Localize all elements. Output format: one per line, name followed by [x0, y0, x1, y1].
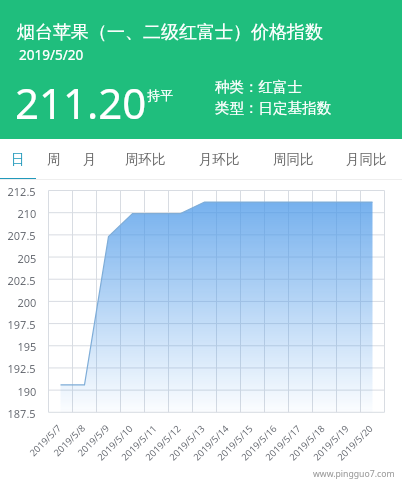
button[interactable]: 月环比: [182, 139, 256, 180]
button[interactable]: 周同比: [256, 139, 330, 180]
staticText: 月环比: [199, 151, 240, 168]
staticText: 日: [11, 151, 25, 168]
staticText: 类型：日定基指数: [215, 99, 331, 117]
button[interactable]: 周环比: [108, 139, 182, 180]
button[interactable]: 月: [72, 139, 108, 180]
staticText: 月同比: [346, 151, 387, 168]
staticText: 周环比: [125, 151, 166, 168]
staticText: 烟台苹果（一、二级红富士）价格指数: [17, 21, 323, 44]
staticText: 2019/5/20: [19, 46, 84, 64]
button[interactable]: 周: [36, 139, 72, 180]
button[interactable]: 月同比: [330, 139, 402, 180]
staticText: 211.20: [15, 74, 147, 131]
staticText: 月: [83, 151, 97, 168]
button[interactable]: 日: [0, 139, 36, 180]
staticText: 周: [47, 151, 61, 168]
staticText: 种类：红富士: [215, 78, 302, 96]
staticText: 持平: [147, 87, 173, 103]
staticText: 周同比: [273, 151, 314, 168]
